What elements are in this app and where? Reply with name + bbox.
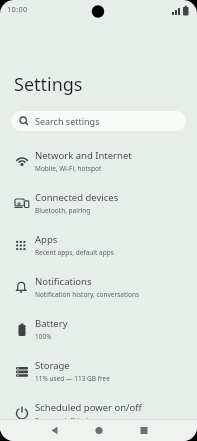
button[interactable]: Notifications <box>0 266 197 308</box>
staticText: Scheduled power on/off <box>35 401 142 414</box>
button[interactable]: Battery <box>0 308 197 350</box>
staticText: Connected devices <box>35 191 119 204</box>
staticText: Bluetooth, pairing <box>35 206 91 215</box>
staticText: 10:00 <box>7 4 28 14</box>
button[interactable] <box>131 419 197 441</box>
staticText: Power on/off timing <box>35 416 97 425</box>
button[interactable]: Network and Internet <box>0 140 197 182</box>
staticText: Storage <box>35 359 70 372</box>
button[interactable]: Storage <box>0 350 197 392</box>
staticText: Mobile, Wi-Fi, hotspot <box>35 164 102 173</box>
button[interactable] <box>0 419 65 441</box>
staticText: Network and Internet <box>35 149 132 162</box>
staticText: Notifications <box>35 275 92 288</box>
staticText: Notification history, conversations <box>35 290 140 299</box>
staticText: Battery <box>35 317 68 330</box>
staticText: Recent apps, default apps <box>35 248 114 257</box>
button[interactable]: Connected devices <box>0 182 197 224</box>
button[interactable]: Apps <box>0 224 197 266</box>
staticText: Settings <box>14 72 83 97</box>
button[interactable]: Scheduled power on/off <box>0 392 197 434</box>
staticText: Search settings <box>35 115 100 127</box>
staticText: Apps <box>35 233 58 246</box>
button[interactable]: Search settings <box>11 111 186 131</box>
staticText: 100% <box>35 332 52 341</box>
button[interactable] <box>65 419 131 441</box>
staticText: 11% used — 113 GB free <box>35 374 110 383</box>
